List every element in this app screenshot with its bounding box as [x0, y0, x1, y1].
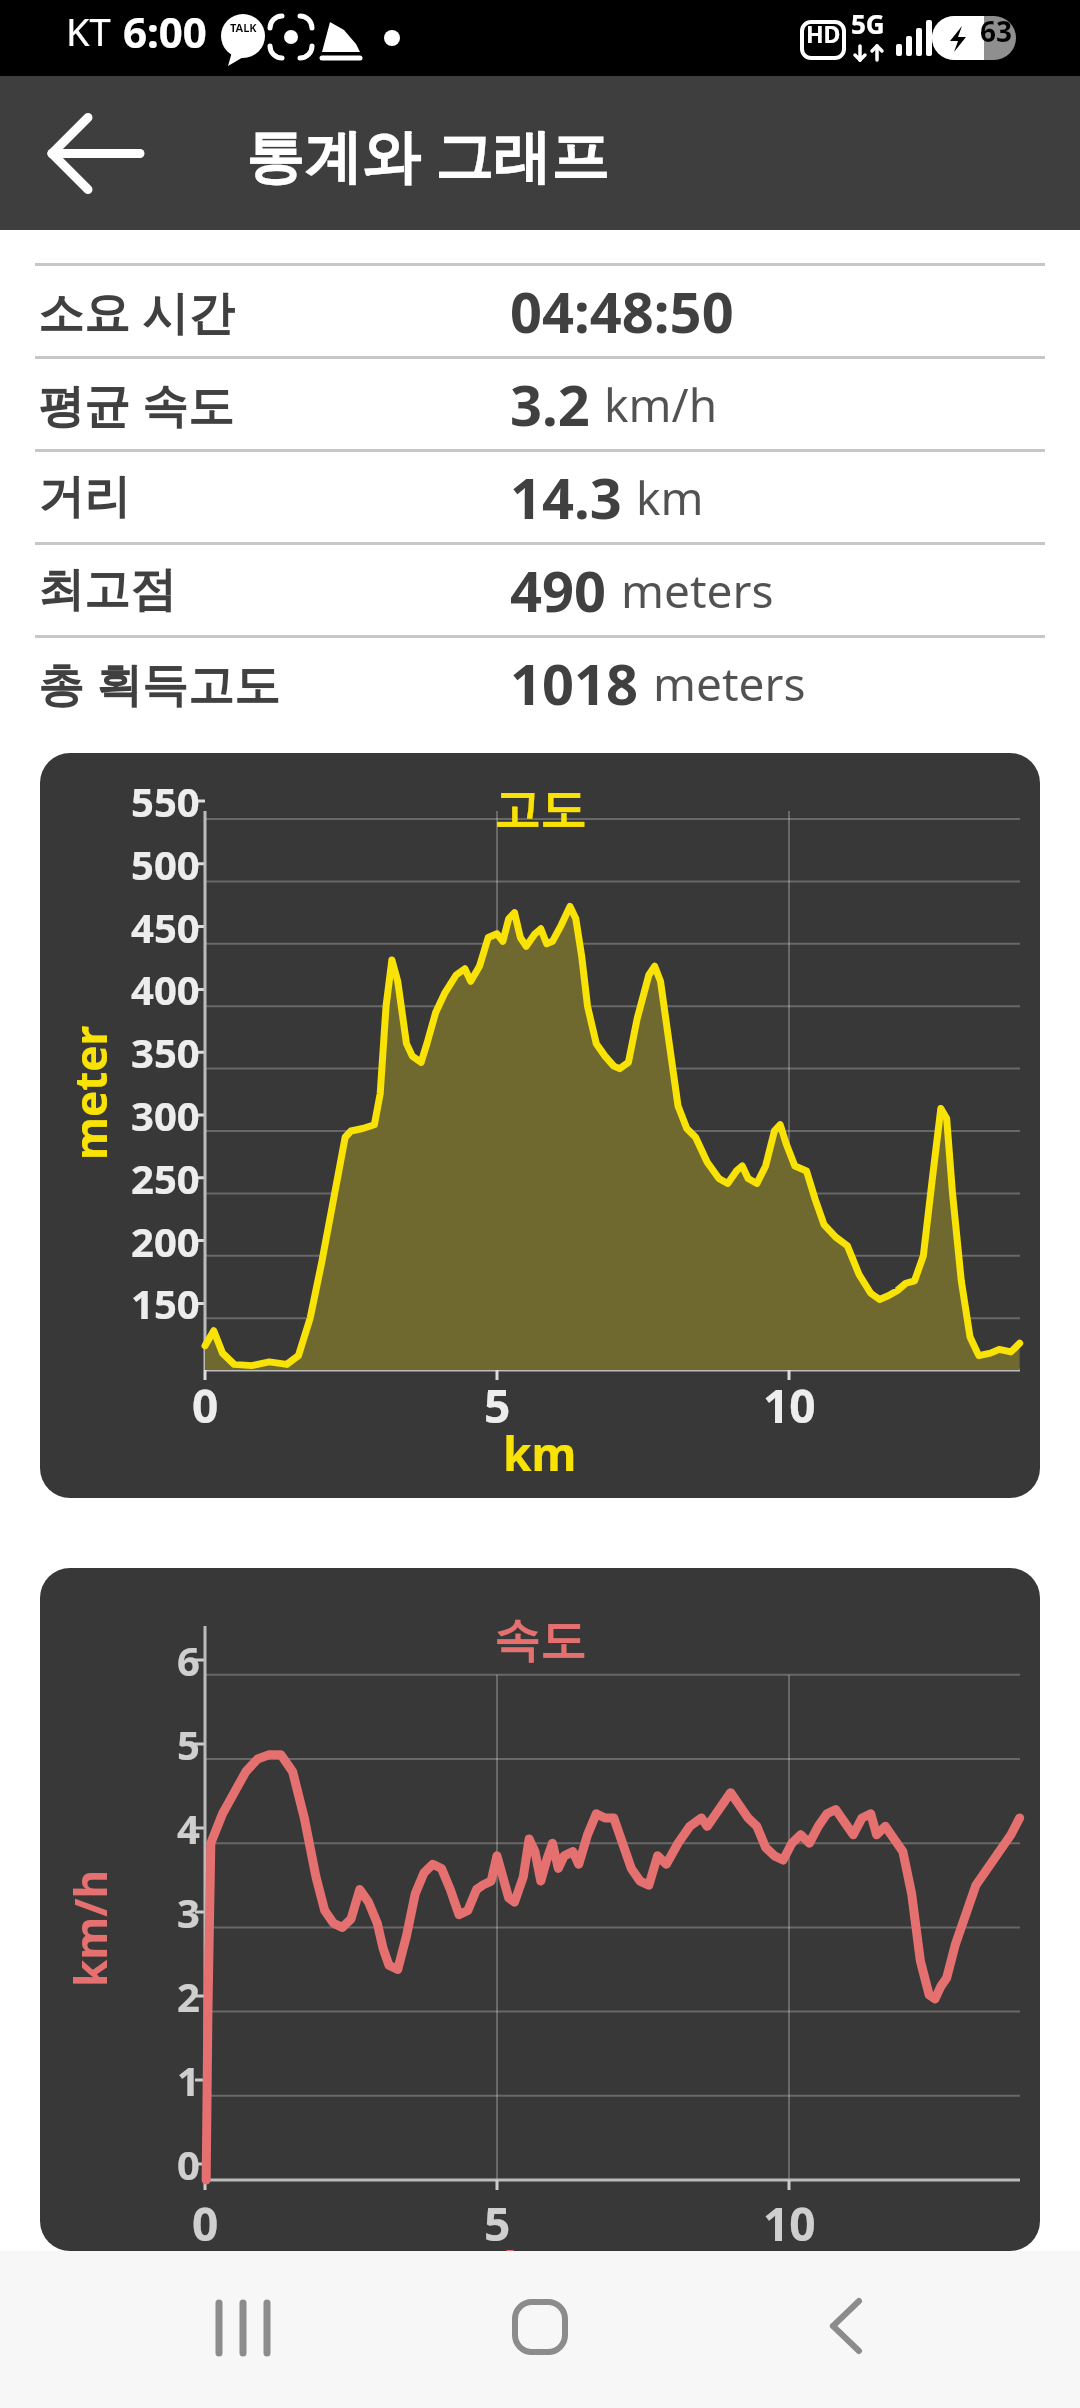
staticText: 1: [177, 2053, 200, 2107]
staticText: 6: [177, 1633, 200, 1687]
staticText: TALK: [230, 20, 257, 35]
staticText: 450: [131, 900, 200, 954]
staticText: 10: [763, 1374, 816, 1437]
staticText: 63: [980, 12, 1013, 50]
staticText: meter: [60, 1025, 120, 1160]
button[interactable]: 거리: [0, 452, 1080, 542]
staticText: 5: [177, 1717, 200, 1771]
staticText: km: [503, 2237, 577, 2251]
staticText: meters: [621, 559, 774, 622]
button[interactable]: 소요 시간: [0, 266, 1080, 356]
button[interactable]: [40, 96, 155, 211]
staticText: 소요 시간: [38, 280, 234, 343]
staticText: km: [636, 466, 704, 529]
button[interactable]: [512, 2299, 568, 2355]
staticText: 10: [763, 2192, 816, 2251]
staticText: 최고점: [38, 561, 176, 619]
staticText: 거리: [38, 468, 130, 526]
staticText: km/h: [604, 373, 718, 436]
button[interactable]: 최고점: [0, 545, 1080, 635]
staticText: 고도: [494, 781, 586, 839]
staticText: 1018: [510, 645, 639, 721]
staticText: 490: [510, 552, 607, 628]
staticText: 400: [131, 962, 200, 1016]
staticText: km: [503, 1422, 577, 1485]
staticText: 14.3: [510, 459, 622, 535]
staticText: 5: [484, 1374, 511, 1437]
staticText: 500: [131, 837, 200, 891]
staticText: km/h: [60, 1869, 120, 1987]
staticText: 2: [177, 1969, 200, 2023]
staticText: 150: [131, 1276, 200, 1330]
staticText: KT: [66, 5, 111, 57]
staticText: meters: [653, 652, 806, 715]
staticText: 550: [131, 774, 200, 828]
staticText: 200: [131, 1214, 200, 1268]
staticText: 3: [177, 1885, 200, 1939]
staticText: 5: [484, 2192, 511, 2251]
staticText: 04:48:50: [510, 273, 734, 349]
staticText: 300: [131, 1088, 200, 1142]
button[interactable]: [815, 2299, 875, 2355]
staticText: 4: [177, 1801, 200, 1855]
staticText: 5G: [851, 6, 885, 41]
staticText: 총 획득고도: [38, 652, 280, 715]
staticText: 0: [192, 2192, 219, 2251]
staticText: 3.2: [510, 366, 590, 442]
staticText: 0: [177, 2137, 200, 2191]
staticText: 속도: [494, 1612, 586, 1670]
button[interactable]: [193, 2301, 293, 2357]
staticText: 250: [131, 1151, 200, 1205]
staticText: 350: [131, 1025, 200, 1079]
staticText: 6:00: [123, 3, 207, 60]
staticText: HD: [806, 18, 841, 49]
staticText: 평균 속도: [38, 373, 234, 436]
button[interactable]: 속도: [40, 1568, 1040, 2251]
staticText: 0: [192, 1374, 219, 1437]
staticText: 통계와 그래프: [246, 115, 610, 194]
button[interactable]: 평균 속도: [0, 359, 1080, 449]
button[interactable]: 총 획득고도: [0, 638, 1080, 728]
button[interactable]: 고도: [40, 753, 1040, 1498]
